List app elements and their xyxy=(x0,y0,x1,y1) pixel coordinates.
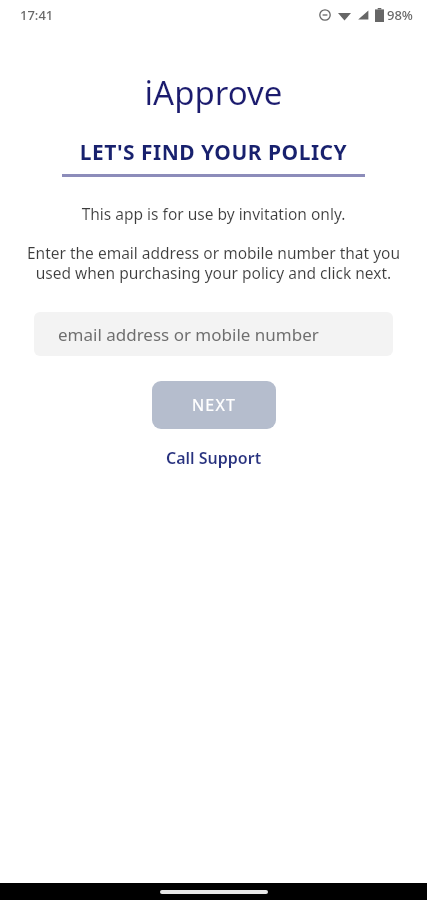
button[interactable]: email address or mobile number xyxy=(34,312,393,356)
button[interactable]: Call Support xyxy=(154,442,274,474)
staticText: NEXT xyxy=(192,394,237,416)
staticText: LET'S FIND YOUR POLICY xyxy=(0,138,427,167)
button[interactable]: NEXT xyxy=(152,381,276,429)
staticText: email address or mobile number xyxy=(58,323,319,346)
staticText: 98% xyxy=(387,6,413,24)
staticText: This app is for use by invitation only. xyxy=(16,203,411,224)
staticText: Call Support xyxy=(166,447,262,469)
staticText: 17:41 xyxy=(20,6,54,24)
staticText: iApprove xyxy=(0,70,427,115)
staticText: Enter the email address or mobile number… xyxy=(14,242,413,284)
